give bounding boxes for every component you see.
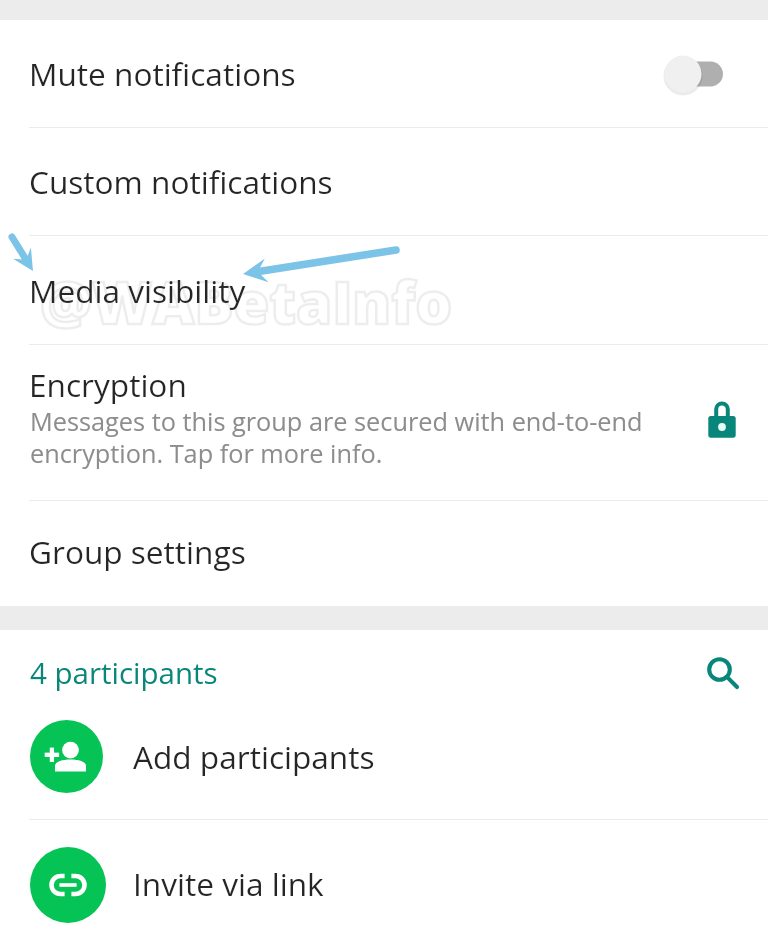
button[interactable]: Invite via link: [0, 820, 768, 937]
staticText: Media visibility: [29, 269, 246, 312]
staticText: Add participants: [133, 735, 375, 778]
staticText: Group settings: [29, 530, 246, 573]
staticText: Mute notifications: [29, 52, 296, 95]
button[interactable]: Mute notifications: [0, 20, 768, 127]
staticText: Custom notifications: [29, 160, 333, 203]
button[interactable]: Media visibility: [0, 236, 768, 344]
staticText: 4 participants: [30, 652, 218, 692]
staticText: Invite via link: [133, 862, 324, 905]
other: Encryption: [700, 394, 744, 438]
staticText: Messages to this group are secured with …: [30, 404, 643, 470]
staticText: Encryption: [29, 363, 187, 406]
button[interactable]: Group settings: [0, 501, 768, 606]
button[interactable]: Search participants: [695, 647, 755, 707]
button[interactable]: Mute notifications toggle: [664, 52, 726, 96]
button[interactable]: Custom notifications: [0, 128, 768, 235]
button[interactable]: Add participants: [0, 720, 768, 819]
button[interactable]: Encryption: [0, 345, 768, 500]
